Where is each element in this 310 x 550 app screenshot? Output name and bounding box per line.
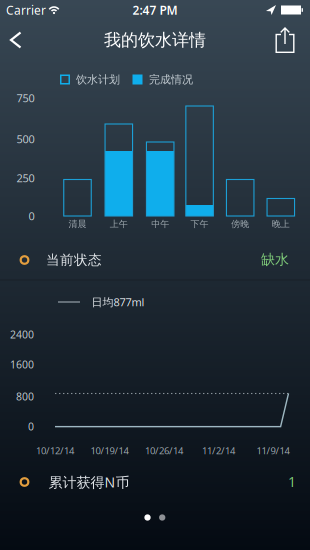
button[interactable]: 当前状态	[0, 240, 310, 279]
staticText: 11/2/14	[202, 444, 235, 457]
button[interactable]	[1, 22, 35, 57]
staticText: 清晨	[68, 218, 86, 230]
staticText: 250	[16, 170, 34, 185]
staticText: 750	[16, 90, 34, 105]
staticText: 800	[16, 389, 34, 404]
staticText: 完成情况	[149, 73, 193, 86]
staticText: 0	[28, 208, 34, 223]
staticText: 10/12/14	[36, 444, 74, 457]
staticText: 10/26/14	[145, 444, 183, 457]
staticText: 饮水计划	[76, 73, 120, 86]
staticText: 傍晚	[231, 218, 249, 230]
staticText: 2400	[10, 327, 34, 342]
button[interactable]	[267, 19, 302, 61]
staticText: 1600	[10, 357, 34, 372]
staticText: 下午	[191, 218, 209, 230]
staticText: 晚上	[272, 218, 290, 230]
staticText: 0	[28, 419, 34, 434]
staticText: 日均877ml	[91, 294, 144, 309]
staticText: 缺水	[261, 251, 289, 268]
staticText: 当前状态	[46, 251, 102, 268]
button[interactable]: 累计获得N币	[0, 465, 310, 499]
staticText: 500	[16, 131, 34, 146]
staticText: 11/9/14	[256, 444, 289, 457]
staticText: 累计获得N币	[48, 472, 129, 492]
staticText: 1	[288, 472, 296, 491]
staticText: 2:47 PM	[132, 2, 177, 18]
staticText: 中午	[151, 218, 169, 230]
staticText: Carrier	[6, 2, 46, 18]
staticText: 10/19/14	[90, 444, 128, 457]
staticText: 我的饮水详情	[104, 29, 206, 51]
staticText: 上午	[110, 218, 128, 230]
